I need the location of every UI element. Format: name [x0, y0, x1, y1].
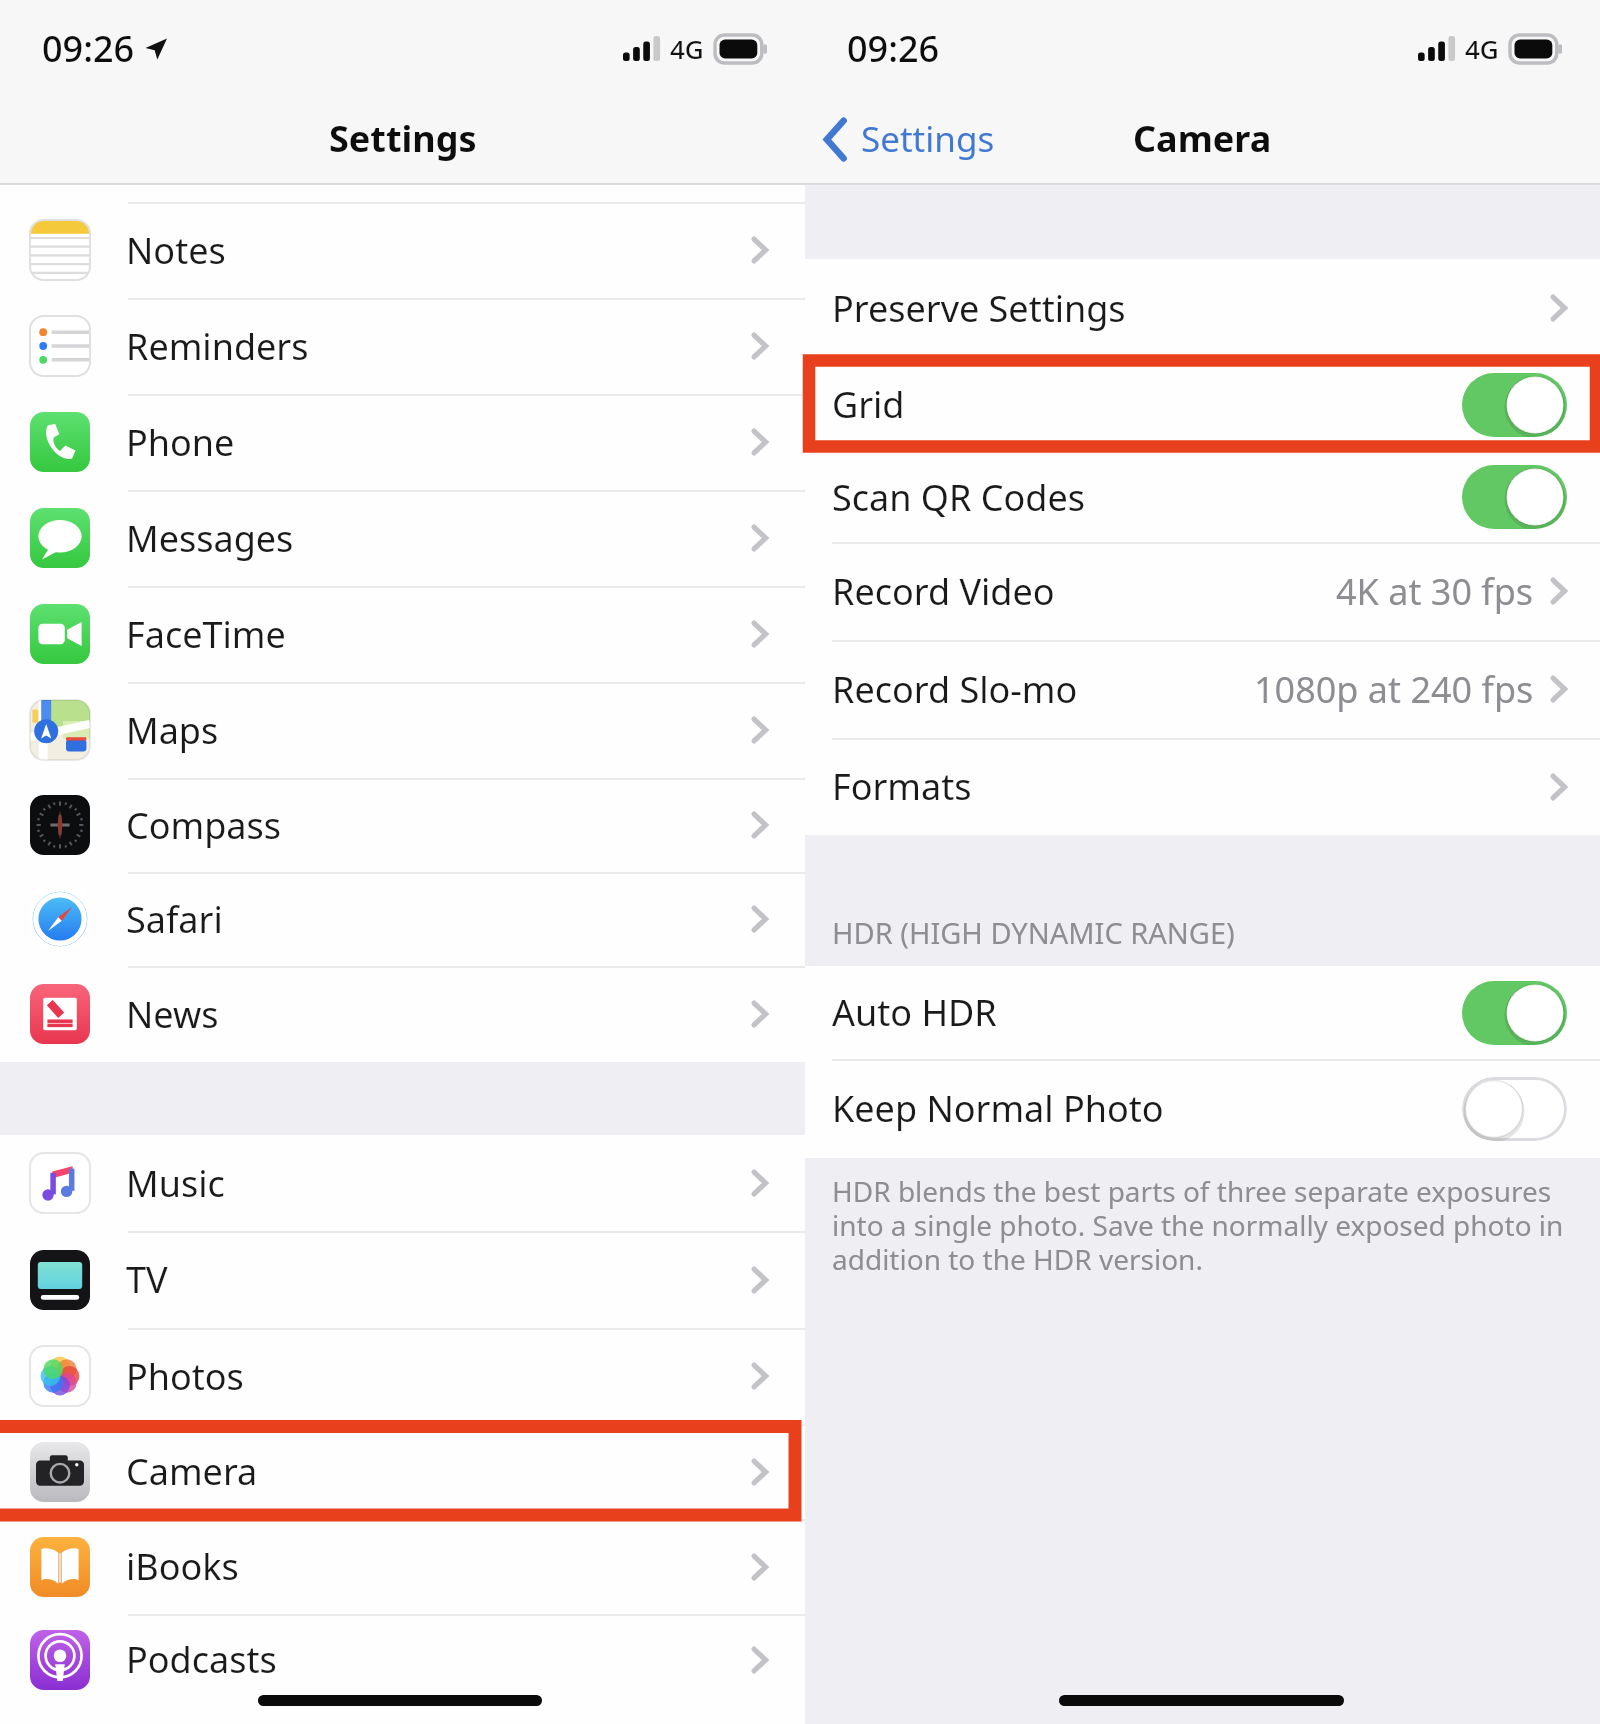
staticText: Safari [126, 895, 223, 944]
staticText: Settings [861, 115, 995, 163]
staticText: 4G [1465, 31, 1499, 66]
button[interactable]: Settings [823, 115, 1003, 163]
button[interactable]: Record Video [805, 542, 1600, 640]
button[interactable]: Phone [0, 394, 805, 490]
staticText: Messages [126, 514, 294, 563]
staticText: News [126, 990, 219, 1039]
staticText: Reminders [126, 322, 309, 371]
button[interactable]: Scan QR Codes [805, 452, 1600, 542]
staticText: 4K at 30 fps [1336, 567, 1534, 616]
button[interactable]: News [0, 966, 805, 1062]
button[interactable]: Compass [0, 778, 805, 872]
button[interactable]: Notes [0, 202, 805, 298]
staticText: Auto HDR [832, 988, 997, 1037]
staticText: Compass [126, 801, 282, 850]
staticText: Notes [126, 226, 226, 275]
staticText: Camera [126, 1447, 258, 1496]
button[interactable]: Record Slo-mo [805, 640, 1600, 738]
staticText: 09:26 [42, 24, 135, 73]
staticText: Settings [329, 114, 477, 163]
button[interactable]: Preserve Settings [805, 259, 1600, 357]
button[interactable]: Safari [0, 872, 805, 966]
staticText: Podcasts [126, 1635, 277, 1684]
button[interactable]: Toggle off [1462, 1077, 1567, 1141]
button[interactable]: Photos [0, 1328, 805, 1424]
button[interactable]: Toggle on [1462, 373, 1567, 437]
staticText: Scan QR Codes [832, 473, 1085, 522]
button[interactable]: FaceTime [0, 586, 805, 682]
button[interactable]: Messages [0, 490, 805, 586]
button[interactable]: Reminders [0, 298, 805, 394]
button[interactable]: Toggle on [1462, 465, 1567, 529]
staticText: Keep Normal Photo [832, 1084, 1164, 1133]
staticText: 4G [670, 31, 704, 66]
staticText: Camera [1133, 114, 1272, 163]
button[interactable]: Grid [805, 357, 1600, 452]
staticText: Preserve Settings [832, 284, 1126, 333]
staticText: Maps [126, 706, 219, 755]
staticText: Formats [832, 762, 972, 811]
button[interactable]: Keep Normal Photo [805, 1059, 1600, 1158]
staticText: HDR (HIGH DYNAMIC RANGE) [832, 913, 1235, 952]
staticText: TV [126, 1255, 168, 1304]
staticText: HDR blends the best parts of three separ… [832, 1172, 1582, 1278]
button[interactable]: Music [0, 1135, 805, 1231]
button[interactable]: Maps [0, 682, 805, 778]
staticText: Record Video [832, 567, 1055, 616]
staticText: FaceTime [126, 610, 286, 659]
button[interactable]: Formats [805, 738, 1600, 835]
staticText: Phone [126, 418, 235, 467]
button[interactable]: Auto HDR [805, 966, 1600, 1059]
staticText: 1080p at 240 fps [1254, 665, 1534, 714]
staticText: Record Slo-mo [832, 665, 1078, 714]
staticText: iBooks [126, 1542, 239, 1591]
staticText: 09:26 [847, 24, 940, 73]
button[interactable]: iBooks [0, 1519, 805, 1614]
button[interactable]: Camera [0, 1424, 805, 1519]
staticText: Grid [832, 380, 905, 429]
staticText: Photos [126, 1352, 244, 1401]
button[interactable]: Toggle on [1462, 981, 1567, 1045]
button[interactable]: TV [0, 1231, 805, 1328]
staticText: Music [126, 1159, 225, 1208]
button[interactable]: Podcasts [0, 1614, 805, 1705]
